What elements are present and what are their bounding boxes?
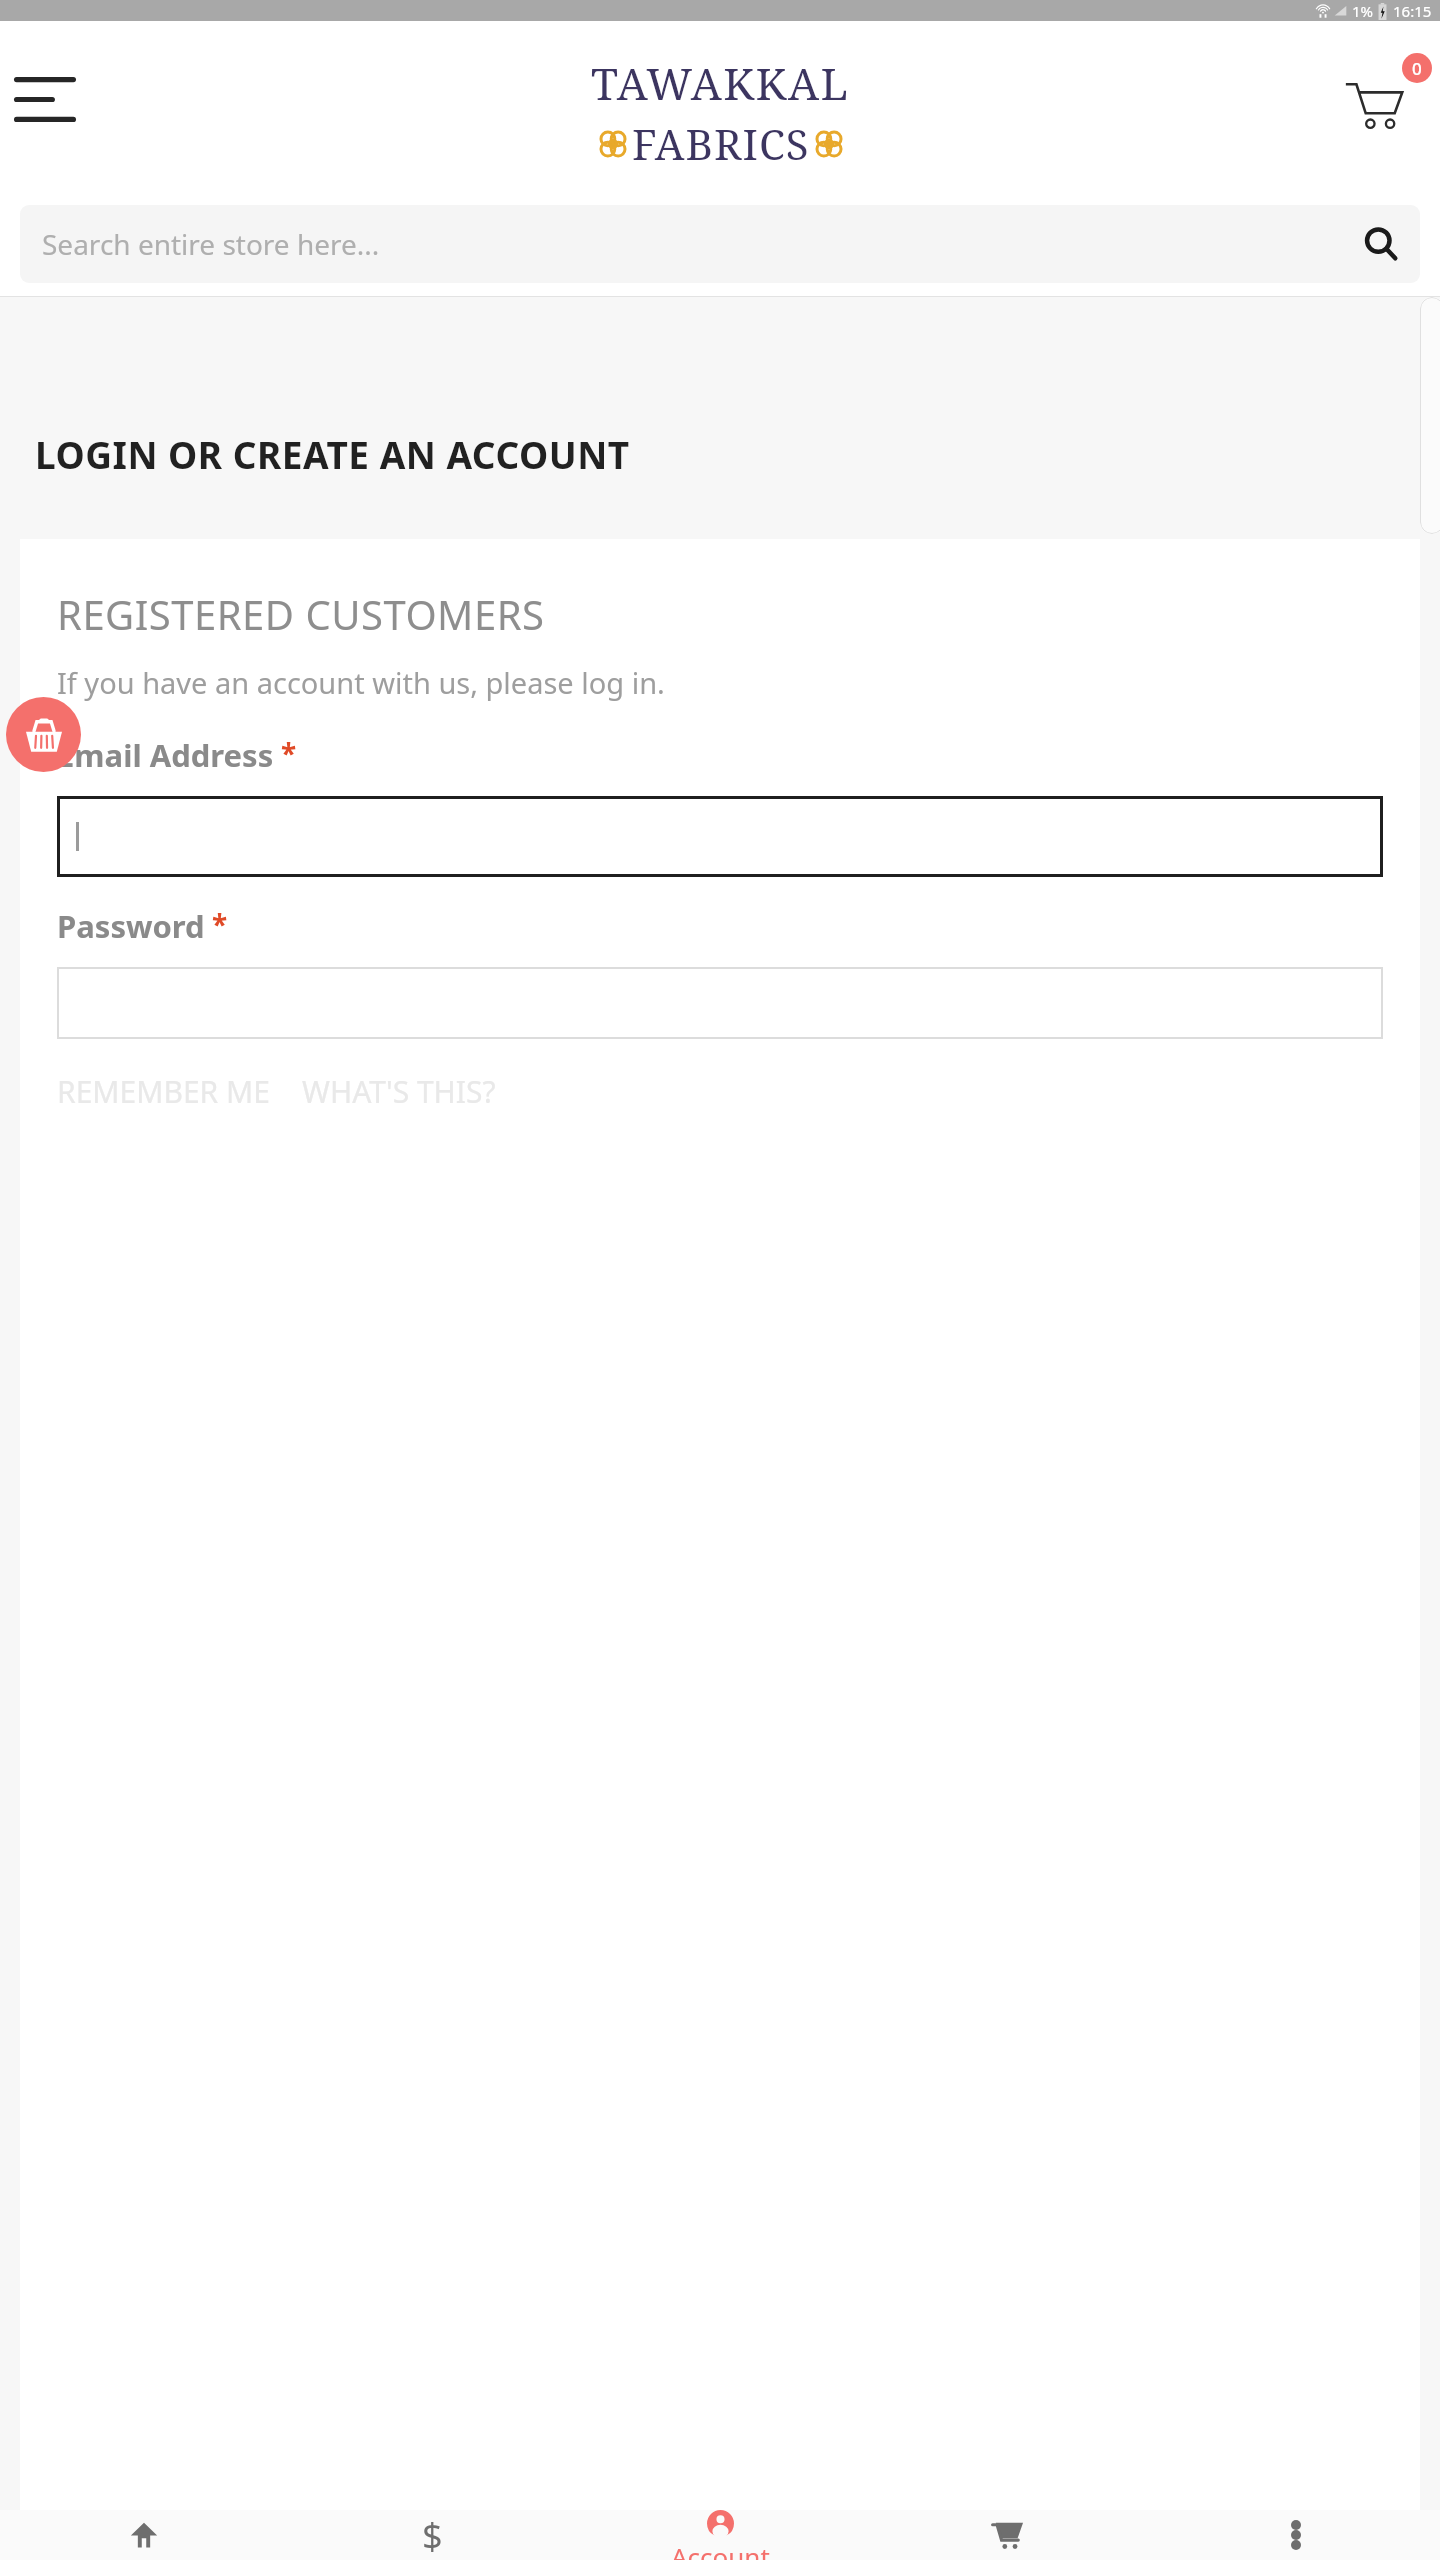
button[interactable]: Cart xyxy=(6,697,81,772)
staticText: * xyxy=(281,734,297,772)
button[interactable]: WHAT'S THIS? xyxy=(302,1071,496,1112)
staticText: Search entire store here... xyxy=(42,225,1364,263)
staticText: 16:15 xyxy=(1393,1,1432,21)
staticText: Email Address xyxy=(57,734,274,776)
staticText: 0 xyxy=(1412,57,1422,80)
button[interactable]: Menu xyxy=(10,69,80,129)
staticText: 1% xyxy=(1352,1,1374,21)
staticText: FABRICS xyxy=(632,115,810,172)
button[interactable]: Shopping cart xyxy=(1344,53,1432,137)
staticText: If you have an account with us, please l… xyxy=(57,663,665,702)
staticText: TAWAKKAL xyxy=(591,53,850,113)
button[interactable]: Account xyxy=(576,2510,864,2560)
staticText: LOGIN OR CREATE AN ACCOUNT xyxy=(35,429,630,479)
staticText: * xyxy=(212,905,228,943)
staticText: Password xyxy=(57,905,205,947)
button[interactable]: Deals xyxy=(288,2510,576,2560)
staticText: Account xyxy=(671,2539,770,2560)
button[interactable]: REMEMBER ME xyxy=(57,1071,270,1112)
staticText: $ xyxy=(422,2511,443,2560)
button[interactable] xyxy=(57,796,1383,877)
button[interactable]: Home xyxy=(0,2510,288,2560)
button[interactable]: More xyxy=(1152,2510,1440,2560)
button[interactable]: Cart xyxy=(864,2510,1152,2560)
staticText: REGISTERED CUSTOMERS xyxy=(57,587,545,641)
button[interactable]: Search entire store here... xyxy=(20,205,1420,283)
button[interactable] xyxy=(57,967,1383,1039)
